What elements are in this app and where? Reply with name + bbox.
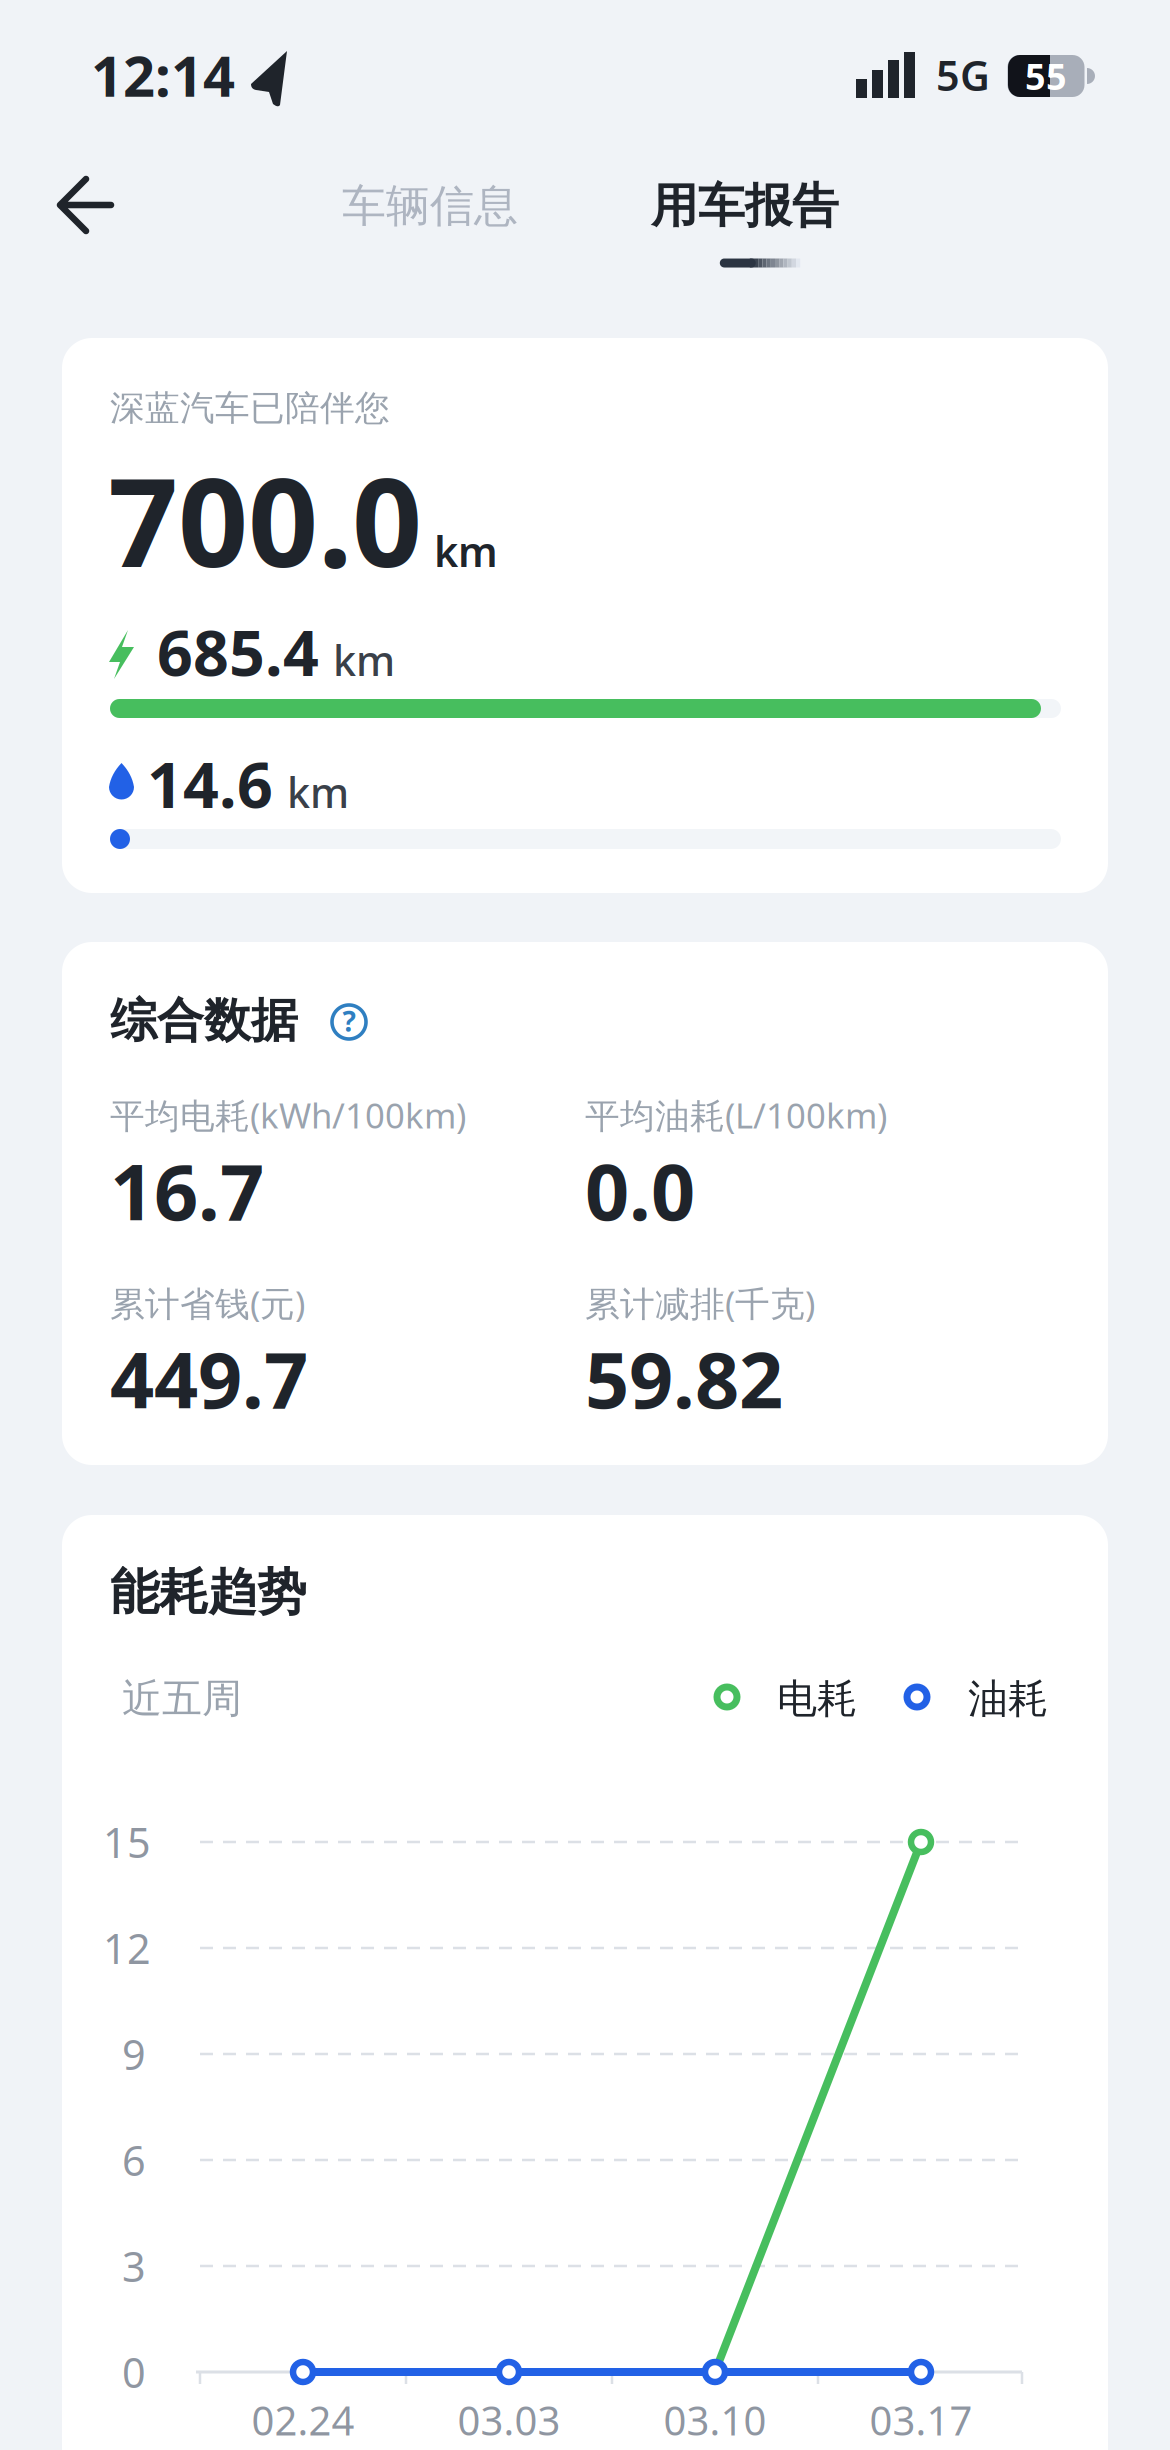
staticText: 3 [122,2239,146,2293]
staticText: 03.10 [663,2393,766,2446]
staticText: 累计减排(千克) [585,1280,815,1326]
staticText: 累计省钱(元) [110,1280,305,1326]
staticText: 0.0 [585,1139,695,1242]
staticText: 59.82 [585,1327,783,1430]
staticText: 电耗 [777,1674,857,1723]
staticText: 近五周 [122,1674,242,1723]
staticText: 9 [122,2027,146,2081]
staticText: ? [342,1002,355,1040]
staticText: 14.6 [147,742,273,825]
staticText: 综合数据 [110,992,298,1049]
button[interactable]: 用车报告 [585,166,905,246]
staticText: 5G [936,48,990,102]
staticText: km [287,764,349,819]
staticText: 12:14 [91,38,235,112]
staticText: 15 [103,1815,151,1869]
staticText: 车辆信息 [342,179,518,233]
staticText: 03.03 [457,2393,560,2446]
staticText: 700.0 [108,438,422,601]
staticText: 685.4 [157,610,319,693]
staticText: 用车报告 [651,177,839,235]
button[interactable]: Back [57,175,115,235]
staticText: km [333,632,395,687]
staticText: 03.17 [869,2393,972,2446]
staticText: 449.7 [110,1327,308,1430]
staticText: 6 [122,2133,146,2187]
staticText: 深蓝汽车已陪伴您 [110,387,390,430]
button[interactable]: About summary data [330,1003,368,1041]
staticText: 0 [122,2345,146,2399]
staticText: 12 [103,1921,151,1975]
staticText: 55 [1025,52,1067,100]
staticText: 能耗趋势 [110,1562,306,1623]
staticText: 平均油耗(L/100km) [585,1092,887,1138]
staticText: km [434,524,498,578]
staticText: 平均电耗(kWh/100km) [110,1092,466,1138]
button[interactable]: 车辆信息 [270,166,590,246]
staticText: 02.24 [251,2393,354,2446]
staticText: 16.7 [110,1139,264,1242]
staticText: 油耗 [968,1674,1048,1723]
